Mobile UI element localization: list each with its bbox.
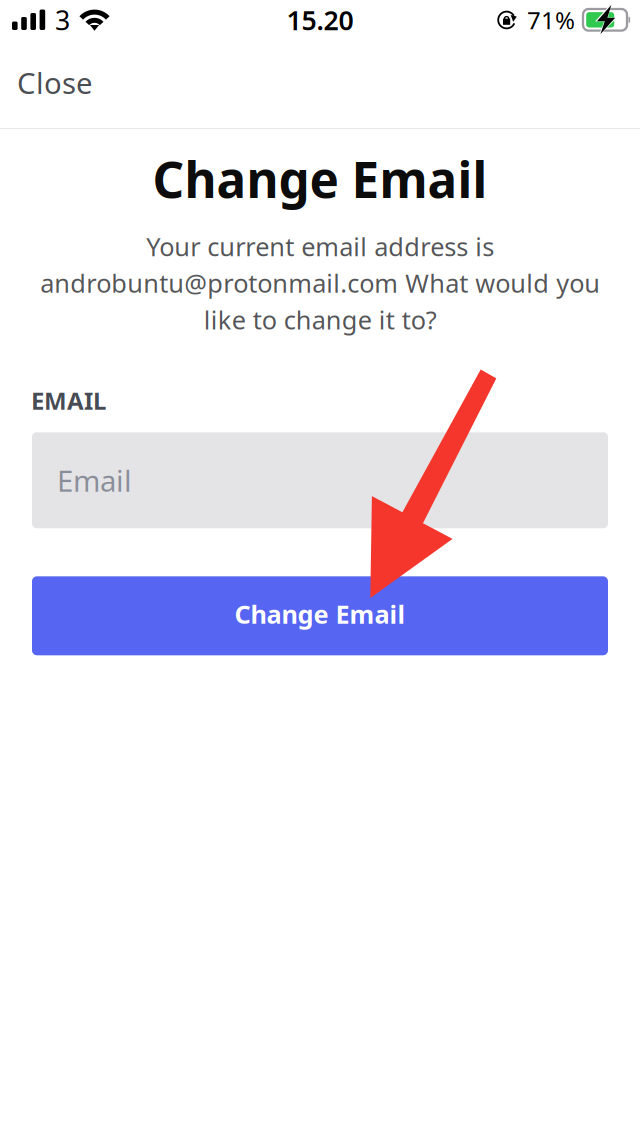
button[interactable]: Email bbox=[32, 432, 608, 528]
staticText: Email bbox=[57, 461, 132, 500]
staticText: Close bbox=[17, 63, 93, 102]
staticText: 71% bbox=[527, 4, 575, 36]
staticText: Change Email bbox=[234, 597, 405, 631]
button[interactable]: Change Email bbox=[32, 576, 608, 655]
button[interactable]: Close bbox=[0, 52, 116, 117]
staticText: Your current email address is androbuntu… bbox=[40, 229, 600, 336]
staticText: Change Email bbox=[152, 146, 487, 211]
staticText: 15.20 bbox=[286, 2, 353, 38]
staticText: 3 bbox=[55, 2, 70, 38]
staticText: EMAIL bbox=[31, 384, 106, 416]
